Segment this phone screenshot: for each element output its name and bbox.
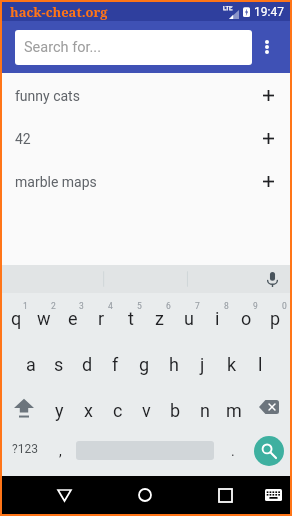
staticText: h <box>169 354 179 375</box>
staticText: 9 <box>253 301 258 311</box>
staticText: 1 <box>23 301 28 311</box>
staticText: LTE <box>223 4 233 11</box>
button[interactable]: Back <box>44 476 84 514</box>
button[interactable]: , <box>48 430 76 476</box>
button[interactable]: . <box>214 430 240 476</box>
staticText: y <box>55 400 64 421</box>
staticText: Search for... <box>24 39 101 56</box>
staticText: a <box>26 354 36 375</box>
button[interactable]: k <box>217 338 246 384</box>
staticText: p <box>270 308 281 329</box>
button[interactable]: x <box>74 384 103 430</box>
button[interactable]: More options <box>250 25 290 69</box>
button[interactable]: Shift <box>2 384 45 430</box>
staticText: o <box>241 308 252 329</box>
button[interactable]: 1 <box>2 293 30 338</box>
button[interactable]: Home <box>125 476 165 514</box>
button[interactable]: Recents <box>205 476 245 514</box>
button[interactable]: 3 <box>58 293 87 338</box>
button[interactable]: c <box>103 384 132 430</box>
staticText: funny cats <box>15 88 80 104</box>
button[interactable]: 9 <box>232 293 261 338</box>
button[interactable]: y <box>45 384 74 430</box>
staticText: b <box>170 400 181 421</box>
staticText: d <box>82 354 93 375</box>
button[interactable]: Search <box>254 436 284 466</box>
staticText: r <box>98 308 105 329</box>
staticText: 8 <box>224 301 229 311</box>
staticText: 42 <box>15 131 31 147</box>
staticText: 3 <box>79 301 84 311</box>
button[interactable]: d <box>73 338 101 384</box>
button[interactable]: 8 <box>203 293 232 338</box>
staticText: g <box>139 354 150 375</box>
button[interactable]: Search for... <box>15 30 252 65</box>
button[interactable]: Keyboard <box>253 476 292 514</box>
staticText: ?123 <box>12 442 38 456</box>
staticText: l <box>258 354 263 375</box>
button[interactable]: 5 <box>116 293 145 338</box>
staticText: hack-cheat.org <box>10 3 108 21</box>
staticText: 5 <box>137 301 142 311</box>
staticText: f <box>112 354 119 375</box>
button[interactable]: Backspace <box>248 384 290 430</box>
staticText: , <box>59 443 62 459</box>
staticText: 4 <box>108 301 113 311</box>
staticText: q <box>11 308 22 329</box>
staticText: e <box>68 308 78 329</box>
button[interactable]: ?123 <box>2 430 48 476</box>
button[interactable]: 4 <box>87 293 116 338</box>
button[interactable]: j <box>188 338 217 384</box>
staticText: n <box>200 400 210 421</box>
staticText: 2 <box>51 301 56 311</box>
staticText: v <box>142 400 151 421</box>
staticText: c <box>113 400 123 421</box>
button[interactable]: 6 <box>145 293 174 338</box>
button[interactable]: funny cats <box>2 74 290 117</box>
button[interactable]: 42 <box>2 117 290 160</box>
button[interactable]: m <box>219 384 248 430</box>
button[interactable]: g <box>130 338 159 384</box>
staticText: 0 <box>282 301 287 311</box>
staticText: x <box>84 400 93 421</box>
button[interactable]: l <box>246 338 275 384</box>
staticText: marble maps <box>15 174 97 190</box>
button[interactable]: b <box>161 384 190 430</box>
staticText: k <box>227 354 237 375</box>
button[interactable]: 0 <box>261 293 290 338</box>
staticText: j <box>200 354 205 375</box>
staticText: 7 <box>195 301 200 311</box>
button[interactable]: 7 <box>174 293 203 338</box>
staticText: m <box>226 400 242 421</box>
button[interactable]: f <box>101 338 130 384</box>
button[interactable]: 2 <box>30 293 58 338</box>
button[interactable]: Voice input <box>262 269 282 289</box>
staticText: w <box>37 308 51 329</box>
staticText: 6 <box>166 301 171 311</box>
staticText: 19:47 <box>254 5 284 19</box>
button[interactable]: marble maps <box>2 160 290 203</box>
button[interactable]: h <box>159 338 188 384</box>
button[interactable]: a <box>17 338 45 384</box>
staticText: s <box>54 354 64 375</box>
staticText: t <box>128 308 134 329</box>
button[interactable]: v <box>132 384 161 430</box>
staticText: z <box>155 308 164 329</box>
staticText: . <box>231 443 235 459</box>
button[interactable]: s <box>45 338 73 384</box>
button[interactable]: n <box>190 384 219 430</box>
staticText: u <box>184 308 194 329</box>
staticText: i <box>215 308 220 329</box>
